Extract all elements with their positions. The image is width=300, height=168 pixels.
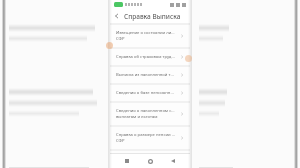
staticText: Сведения о накопленном социальном — [116, 108, 176, 114]
button[interactable]: Сведения о базе пенсионных остатков — [110, 85, 190, 101]
button[interactable]: Главный экран — [144, 155, 156, 167]
button[interactable]: Справка об страховом трудовом — [110, 49, 190, 65]
staticText: выплатам и льготам — [116, 114, 158, 120]
button[interactable]: Справка о размере пенсии и иных выплат — [110, 127, 190, 149]
staticText: Справка о размере пенсии и иных выплат — [116, 132, 176, 138]
staticText: СФР — [116, 36, 125, 42]
button[interactable]: Назад — [167, 155, 179, 167]
button[interactable]: Извещение о состоянии лицевого счета в — [110, 25, 190, 47]
staticText: СФР — [116, 138, 125, 144]
staticText: Выписка из накопленной трудовой книжки — [116, 72, 176, 78]
button[interactable]: Назад — [110, 9, 124, 23]
staticText: Извещение о состоянии лицевого счета в — [116, 30, 176, 36]
staticText: Справка Выписка — [124, 12, 181, 21]
staticText: Справка об страховом трудовом — [116, 54, 176, 60]
button[interactable]: Сведения о накопленном социальном — [110, 103, 190, 125]
button[interactable]: Недавние — [121, 155, 133, 167]
button[interactable]: Выписка из накопленной трудовой книжки — [110, 67, 190, 83]
staticText: Сведения о базе пенсионных остатков — [116, 90, 176, 96]
